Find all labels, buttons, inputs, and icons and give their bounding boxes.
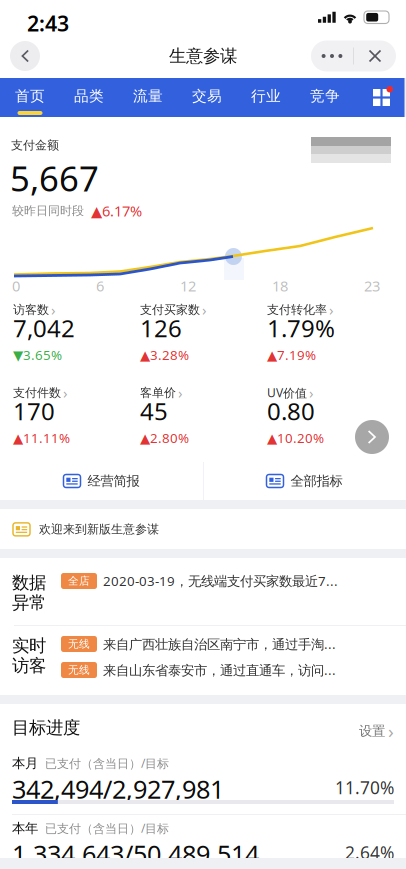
staticText: UV价值 [267, 385, 307, 401]
staticText: 首页 [15, 87, 45, 105]
button[interactable]: 流量 [118, 78, 177, 117]
staticText: 全部指标 [290, 473, 342, 489]
button[interactable]: 设置 [359, 718, 406, 744]
staticText: 实时 [12, 635, 46, 656]
staticText: 竞争 [310, 87, 340, 105]
staticText: 12 [180, 276, 196, 295]
staticText: › [63, 383, 68, 402]
staticText: › [309, 383, 314, 402]
staticText: 2020-03-19，无线端支付买家数最近7天… [103, 572, 343, 590]
staticText: 行业 [251, 87, 281, 105]
staticText: 2.64% [345, 841, 394, 864]
staticText: 异常 [12, 592, 46, 613]
staticText: ▼3.65% [13, 346, 62, 364]
staticText: 170 [13, 395, 55, 427]
staticText: 访客数 [13, 302, 49, 317]
staticText: 已支付（含当日）/目标 [45, 755, 169, 771]
staticText: 11.70% [335, 776, 394, 799]
staticText: 数据 [12, 572, 46, 593]
staticText: › [178, 383, 183, 402]
staticText: 126 [140, 312, 182, 344]
button[interactable]: 交易 [177, 78, 236, 117]
staticText: 访客 [12, 655, 46, 676]
button[interactable]: All modules [362, 78, 400, 117]
staticText: 交易 [192, 87, 222, 105]
staticText: 客单价 [140, 385, 176, 400]
staticText: 欢迎来到新版生意参谋 [39, 522, 159, 537]
button[interactable]: 欢迎来到新版生意参谋 [0, 509, 406, 549]
button[interactable]: 全部指标 [203, 462, 406, 500]
button[interactable]: UV价值 [267, 379, 394, 462]
button[interactable]: More options and close [311, 40, 396, 71]
button[interactable]: Back [10, 41, 40, 71]
button[interactable]: 访客数 [13, 296, 140, 379]
staticText: 1,334,643/50,489,514 [12, 837, 259, 869]
staticText: 342,494/2,927,981 [12, 772, 224, 806]
staticText: › [329, 300, 334, 319]
staticText: 经营简报 [87, 473, 139, 489]
staticText: 1.79% [267, 312, 335, 344]
staticText: 支付件数 [13, 385, 61, 400]
button[interactable]: 行业 [236, 78, 295, 117]
staticText: 2:43 [27, 9, 69, 37]
staticText: ▲7.19% [267, 346, 316, 364]
staticText: 设置 [359, 723, 385, 739]
staticText: 支付转化率 [267, 302, 327, 317]
staticText: 7,042 [13, 312, 75, 344]
staticText: 流量 [133, 87, 163, 105]
staticText: ▲10.20% [267, 429, 324, 447]
staticText: › [51, 300, 56, 319]
staticText: ▲2.80% [140, 429, 189, 447]
staticText: 支付金额 [11, 138, 59, 153]
button[interactable]: 经营简报 [0, 462, 203, 500]
staticText: 0 [12, 276, 20, 295]
staticText: ▲3.28% [140, 346, 189, 364]
staticText: 无线 [68, 663, 90, 676]
button[interactable]: 支付转化率 [267, 296, 394, 379]
button[interactable]: 支付件数 [13, 379, 140, 462]
staticText: 已支付（含当日）/目标 [45, 820, 169, 836]
staticText: 本年 [12, 820, 38, 836]
staticText: 生意参谋 [169, 45, 237, 67]
button[interactable]: 首页 [0, 78, 59, 117]
staticText: 来自广西壮族自治区南宁市，通过手淘搜… [103, 635, 343, 653]
button[interactable]: 客单价 [140, 379, 267, 462]
staticText: 较昨日同时段 [12, 203, 84, 218]
staticText: 23 [364, 276, 380, 295]
staticText: 无线 [68, 637, 90, 650]
button[interactable]: 品类 [59, 78, 118, 117]
staticText: 0.80 [267, 395, 315, 427]
staticText: ▲11.11% [13, 429, 70, 447]
staticText: 18 [272, 276, 288, 295]
staticText: 6 [96, 276, 104, 295]
staticText: ▲6.17% [91, 201, 142, 220]
staticText: 本月 [12, 755, 38, 771]
staticText: › [202, 300, 207, 319]
button[interactable]: 支付买家数 [140, 296, 267, 379]
staticText: 目标进度 [12, 717, 80, 738]
button[interactable]: Next page [355, 420, 389, 454]
staticText: 来自山东省泰安市，通过直通车，访问商… [103, 661, 343, 679]
staticText: 全店 [68, 574, 90, 587]
staticText: 支付买家数 [140, 302, 200, 317]
button[interactable]: 竞争 [295, 78, 354, 117]
staticText: 品类 [74, 87, 104, 105]
staticText: 45 [140, 395, 168, 427]
staticText: › [388, 719, 394, 743]
staticText: 5,667 [10, 155, 99, 201]
